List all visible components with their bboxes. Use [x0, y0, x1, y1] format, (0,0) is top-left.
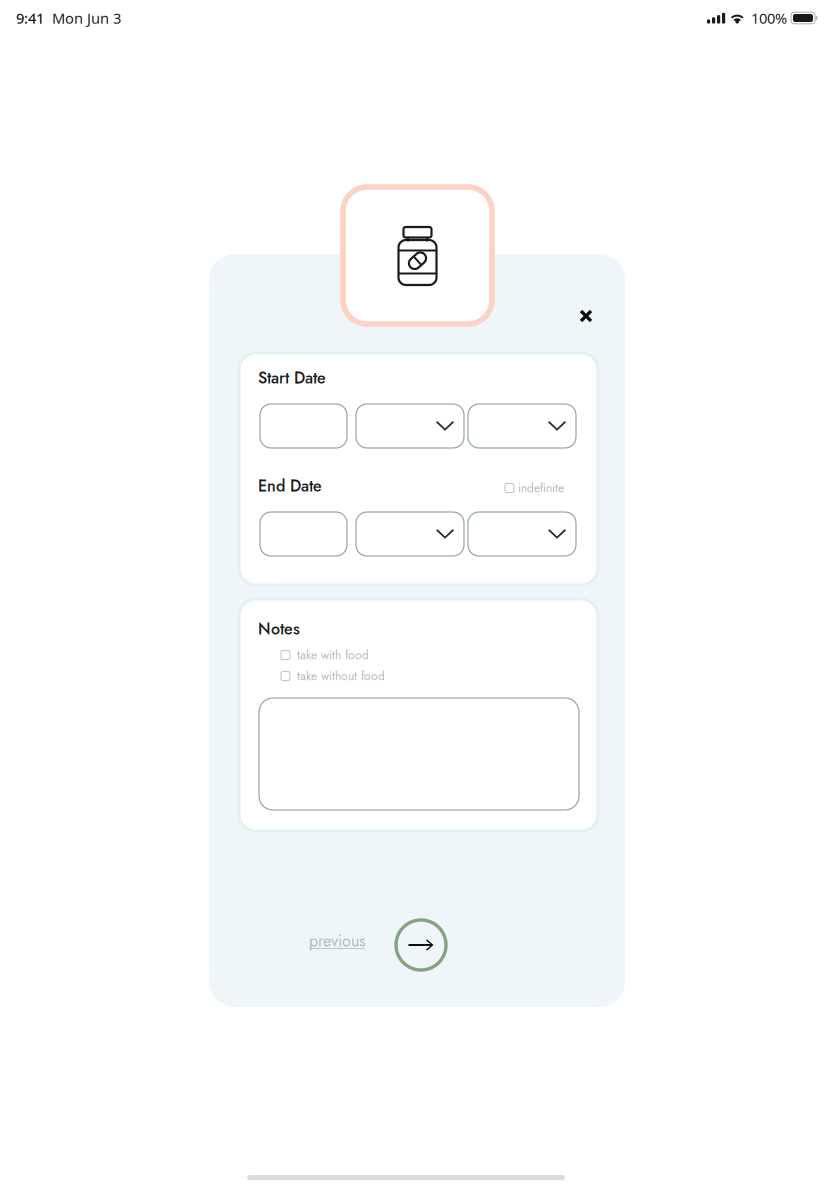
button[interactable]: Close — [573, 303, 599, 329]
button[interactable]: indefinite — [505, 479, 595, 497]
button[interactable]: Choose — [356, 512, 464, 556]
staticText: End Date — [258, 474, 322, 497]
staticText: take without food — [297, 667, 385, 685]
button[interactable]: Choose — [356, 404, 464, 448]
staticText: Start Date — [258, 366, 326, 389]
staticText: previous — [309, 929, 365, 952]
staticText: 9:41 — [16, 8, 44, 28]
staticText: take with food — [297, 646, 369, 664]
button[interactable]: Day — [260, 404, 347, 448]
staticText: Notes — [258, 617, 300, 640]
button[interactable]: previous — [309, 929, 365, 952]
button[interactable]: Day — [260, 512, 347, 556]
staticText: indefinite — [518, 479, 564, 497]
button[interactable]: Choose — [468, 404, 576, 448]
staticText: Mon Jun 3 — [44, 8, 121, 28]
staticText: 100% — [751, 8, 787, 28]
button[interactable]: take with food — [281, 646, 481, 664]
button[interactable]: Next — [394, 918, 448, 972]
button[interactable]: Choose — [468, 512, 576, 556]
button[interactable]: take without food — [281, 667, 481, 685]
